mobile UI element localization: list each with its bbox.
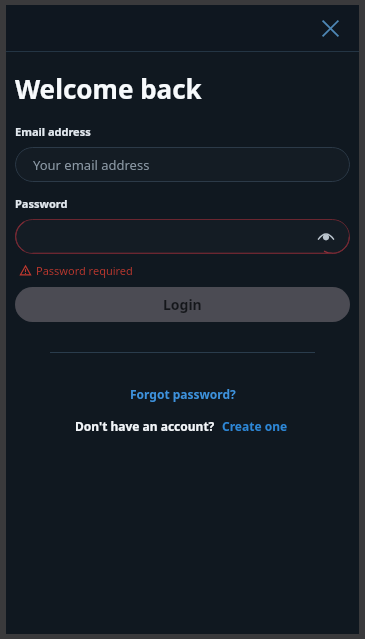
button[interactable]: Show password [15,219,350,254]
button[interactable]: Your email address [15,147,350,182]
button[interactable]: Forgot password? [126,384,240,404]
staticText: Email address [15,124,91,139]
staticText: Don't have an account? [75,418,215,434]
staticText: Create one [222,418,288,434]
button[interactable]: Login [15,287,350,322]
staticText: Your email address [33,156,150,174]
staticText: Forgot password? [130,386,236,402]
staticText: Welcome back [15,71,202,106]
staticText: Login [163,295,202,314]
staticText: Password [15,196,68,211]
staticText: Password required [36,263,133,278]
button[interactable]: Create one [220,416,290,436]
button[interactable]: Show password [312,223,340,251]
button[interactable]: Close [313,11,347,45]
